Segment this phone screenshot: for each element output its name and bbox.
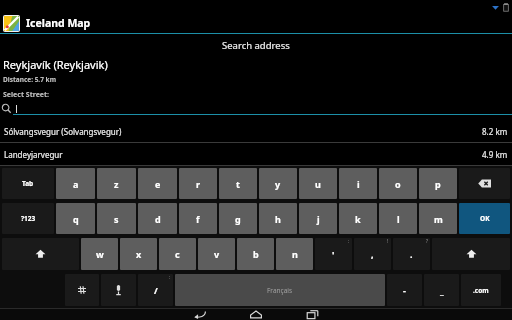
staticText: ?123 bbox=[21, 214, 36, 223]
staticText: b bbox=[253, 248, 259, 260]
button[interactable]: r bbox=[179, 168, 217, 199]
button[interactable]: OK bbox=[459, 203, 510, 234]
button[interactable]: : bbox=[315, 238, 352, 270]
button[interactable]: t bbox=[219, 168, 257, 199]
button[interactable]: Delete bbox=[459, 168, 510, 199]
button[interactable]: Home bbox=[245, 308, 267, 320]
button[interactable]: n bbox=[276, 238, 313, 270]
staticText: d bbox=[155, 213, 161, 225]
staticText: g bbox=[235, 213, 241, 225]
staticText: y bbox=[275, 178, 281, 190]
button[interactable]: w bbox=[81, 238, 118, 270]
staticText: l bbox=[397, 213, 400, 225]
staticText: n bbox=[292, 248, 298, 260]
staticText: k bbox=[355, 213, 361, 225]
button[interactable]: q bbox=[56, 203, 95, 234]
button[interactable]: v bbox=[198, 238, 235, 270]
staticText: Iceland Map bbox=[26, 16, 91, 30]
button[interactable]: - bbox=[387, 274, 422, 306]
staticText: Select Street: bbox=[3, 90, 50, 100]
staticText: / bbox=[154, 284, 158, 296]
staticText: Landeyjarvegur bbox=[4, 149, 63, 160]
button[interactable]: i bbox=[339, 168, 377, 199]
staticText: v bbox=[214, 248, 220, 260]
staticText: ' bbox=[332, 248, 335, 260]
staticText: 4.9 km bbox=[482, 149, 508, 160]
staticText: - bbox=[403, 284, 406, 296]
staticText: j bbox=[317, 213, 320, 225]
button[interactable]: Voice input bbox=[101, 274, 136, 306]
button[interactable] bbox=[0, 102, 512, 115]
staticText: , bbox=[371, 248, 374, 260]
button[interactable]: _ bbox=[424, 274, 459, 306]
button[interactable]: x bbox=[120, 238, 157, 270]
staticText: c bbox=[175, 248, 180, 260]
staticText: s bbox=[114, 213, 119, 225]
button[interactable]: Back bbox=[189, 308, 211, 320]
button[interactable]: f bbox=[179, 203, 217, 234]
staticText: : bbox=[169, 274, 171, 280]
button[interactable]: ! bbox=[354, 238, 391, 270]
button[interactable]: p bbox=[419, 168, 457, 199]
staticText: Reykjavík (Reykjavik) bbox=[3, 57, 108, 72]
button[interactable]: s bbox=[97, 203, 136, 234]
staticText: Sólvangsvegur (Solvangsvegur) bbox=[4, 126, 122, 137]
staticText: r bbox=[196, 178, 201, 190]
staticText: h bbox=[275, 213, 281, 225]
staticText: q bbox=[73, 213, 79, 225]
button[interactable]: k bbox=[339, 203, 377, 234]
staticText: z bbox=[114, 178, 119, 190]
staticText: . bbox=[410, 248, 413, 260]
staticText: 8.2 km bbox=[482, 126, 508, 137]
staticText: u bbox=[315, 178, 321, 190]
button[interactable]: ?123 bbox=[2, 203, 54, 234]
staticText: .com bbox=[473, 286, 489, 295]
staticText: t bbox=[236, 178, 240, 190]
button[interactable]: e bbox=[138, 168, 177, 199]
button[interactable]: Français bbox=[175, 274, 385, 306]
button[interactable]: j bbox=[299, 203, 337, 234]
button[interactable]: Recent apps bbox=[301, 308, 323, 320]
button[interactable]: b bbox=[237, 238, 274, 270]
staticText: w bbox=[96, 248, 104, 260]
staticText: : bbox=[348, 238, 350, 244]
staticText: f bbox=[196, 213, 200, 225]
button[interactable]: Tab bbox=[2, 168, 54, 199]
staticText: e bbox=[155, 178, 161, 190]
button[interactable]: o bbox=[379, 168, 417, 199]
button[interactable]: c bbox=[159, 238, 196, 270]
button[interactable]: l bbox=[379, 203, 417, 234]
button[interactable]: z bbox=[97, 168, 136, 199]
staticText: ! bbox=[387, 238, 389, 244]
button[interactable]: Sólvangsvegur (Solvangsvegur) bbox=[0, 120, 512, 142]
button[interactable]: Shift bbox=[432, 238, 510, 270]
staticText: a bbox=[73, 178, 79, 190]
button[interactable]: ? bbox=[393, 238, 430, 270]
staticText: Tab bbox=[22, 179, 34, 188]
button[interactable]: m bbox=[419, 203, 457, 234]
button[interactable]: h bbox=[259, 203, 297, 234]
button[interactable]: u bbox=[299, 168, 337, 199]
button[interactable]: a bbox=[56, 168, 95, 199]
staticText: p bbox=[435, 178, 441, 190]
button[interactable]: .com bbox=[461, 274, 501, 306]
staticText: Search address bbox=[222, 39, 290, 52]
staticText: m bbox=[434, 213, 443, 225]
staticText: i bbox=[357, 178, 360, 190]
staticText: Français bbox=[267, 286, 293, 295]
button[interactable]: : bbox=[138, 274, 173, 306]
button[interactable]: y bbox=[259, 168, 297, 199]
button[interactable]: d bbox=[138, 203, 177, 234]
button[interactable]: g bbox=[219, 203, 257, 234]
staticText: ? bbox=[426, 238, 428, 244]
staticText: _ bbox=[440, 284, 444, 296]
staticText: Distance: 5.7 km bbox=[3, 75, 56, 84]
button[interactable]: Shift bbox=[2, 238, 79, 270]
staticText: o bbox=[395, 178, 401, 190]
staticText: x bbox=[136, 248, 142, 260]
button[interactable]: Landeyjarvegur bbox=[0, 143, 512, 165]
button[interactable]: Change keyboard bbox=[65, 274, 99, 306]
staticText: OK bbox=[480, 214, 490, 223]
